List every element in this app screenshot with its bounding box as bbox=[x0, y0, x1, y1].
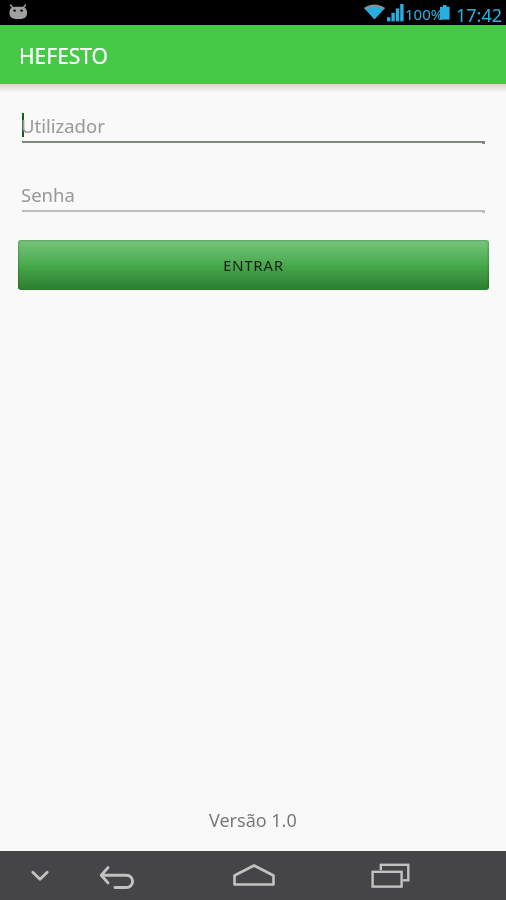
staticText: 100% bbox=[405, 4, 444, 24]
button[interactable]: ENTRAR bbox=[18, 240, 489, 290]
staticText: Senha bbox=[21, 182, 75, 207]
staticText: ENTRAR bbox=[223, 255, 284, 275]
staticText: 17:42 bbox=[456, 3, 503, 28]
staticText: Utilizador bbox=[21, 113, 105, 138]
button[interactable]: Back bbox=[88, 851, 148, 900]
button[interactable]: Recent apps bbox=[360, 851, 420, 900]
staticText: Versão 1.0 bbox=[209, 808, 297, 833]
staticText: HEFESTO bbox=[19, 42, 108, 71]
button[interactable]: Hide keyboard bbox=[10, 851, 70, 900]
button[interactable]: Senha bbox=[18, 177, 488, 215]
button[interactable]: Home bbox=[224, 851, 284, 900]
button[interactable]: Utilizador bbox=[18, 108, 488, 146]
